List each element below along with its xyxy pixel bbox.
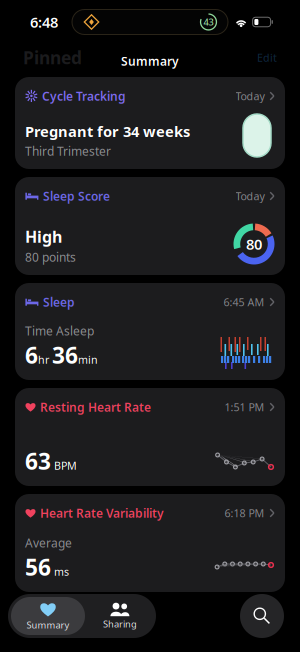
staticText: Time Asleep: [25, 323, 94, 339]
button[interactable]: Sleep Score: [15, 177, 285, 275]
staticText: Summary: [121, 53, 179, 69]
staticText: Resting Heart Rate: [40, 399, 151, 415]
staticText: Sleep: [43, 294, 75, 310]
staticText: Sleep Score: [43, 188, 110, 204]
staticText: 6:48: [30, 12, 58, 32]
button[interactable]: Sharing: [87, 597, 153, 635]
staticText: High: [25, 226, 62, 247]
button[interactable]: Cycle Tracking: [15, 77, 285, 169]
staticText: Pinned: [23, 46, 82, 69]
staticText: Summary: [26, 619, 69, 631]
button[interactable]: Edit: [257, 50, 300, 65]
staticText: Sharing: [103, 618, 137, 630]
staticText: 1:51 PM: [224, 400, 264, 414]
button[interactable]: Heart Rate Variability: [15, 494, 285, 592]
staticText: 6:18 PM: [224, 506, 264, 520]
staticText: 43: [203, 16, 213, 28]
button[interactable]: Search: [240, 594, 284, 638]
staticText: Average: [25, 535, 72, 551]
staticText: Pregnant for 34 weeks: [25, 122, 190, 141]
button[interactable]: Sleep: [15, 283, 285, 380]
staticText: Today: [235, 189, 264, 203]
staticText: Cycle Tracking: [42, 88, 126, 104]
staticText: 80: [246, 234, 262, 254]
staticText: Heart Rate Variability: [40, 505, 164, 521]
staticText: 63 BPM: [25, 446, 77, 476]
staticText: 80 points: [25, 249, 76, 265]
button[interactable]: Resting Heart Rate: [15, 388, 285, 486]
staticText: 6hr 36min: [25, 340, 98, 370]
staticText: 6:45 AM: [223, 295, 264, 309]
staticText: Today: [235, 89, 264, 103]
button[interactable]: Summary: [11, 597, 85, 635]
staticText: Third Trimester: [25, 143, 111, 159]
staticText: Edit: [257, 50, 277, 65]
staticText: 56 ms: [25, 552, 69, 582]
